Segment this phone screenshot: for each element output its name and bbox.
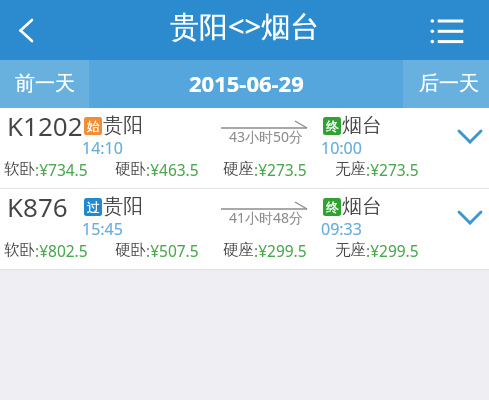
button[interactable]: 前一天 [0, 60, 89, 108]
staticText: 后一天 [419, 71, 479, 96]
staticText: 贵阳 [103, 113, 143, 138]
staticText: 10:00 [321, 137, 362, 159]
staticText: 软卧 [4, 159, 35, 179]
staticText: 过 [87, 199, 100, 215]
button[interactable]: Back [0, 0, 56, 56]
staticText: :¥273.5 [366, 159, 419, 180]
staticText: 烟台 [342, 113, 382, 138]
staticText: 无座 [335, 240, 366, 260]
staticText: 15:45 [82, 218, 123, 240]
staticText: K1202 [7, 108, 83, 143]
staticText: :¥507.5 [146, 240, 199, 261]
staticText: 硬卧 [115, 240, 146, 260]
staticText: :¥463.5 [146, 159, 199, 180]
staticText: :¥273.5 [254, 159, 307, 180]
staticText: 烟台 [342, 194, 382, 219]
staticText: 贵阳 [103, 194, 143, 219]
staticText: 无座 [335, 159, 366, 179]
button[interactable]: K876 [0, 189, 489, 269]
button[interactable]: 后一天 [403, 60, 489, 108]
staticText: 09:33 [321, 218, 362, 240]
button[interactable]: K1202 [0, 108, 489, 188]
button[interactable]: Expand [450, 192, 489, 232]
staticText: 贵阳<>烟台 [170, 6, 320, 46]
button[interactable]: Expand [450, 111, 489, 151]
staticText: K876 [7, 189, 68, 224]
staticText: :¥802.5 [35, 240, 88, 261]
staticText: 前一天 [15, 71, 75, 96]
button[interactable]: Menu [428, 2, 484, 58]
staticText: 2015-06-29 [189, 68, 304, 98]
staticText: 终 [326, 199, 339, 215]
staticText: :¥299.5 [254, 240, 307, 261]
staticText: 始 [87, 118, 100, 134]
staticText: 硬座 [223, 159, 254, 179]
staticText: 硬卧 [115, 159, 146, 179]
staticText: 软卧 [4, 240, 35, 260]
staticText: 硬座 [223, 240, 254, 260]
staticText: :¥299.5 [366, 240, 419, 261]
staticText: 43小时50分 [229, 127, 304, 146]
staticText: 41小时48分 [229, 208, 304, 227]
staticText: 14:10 [82, 137, 123, 159]
staticText: 终 [326, 118, 339, 134]
staticText: :¥734.5 [35, 159, 88, 180]
